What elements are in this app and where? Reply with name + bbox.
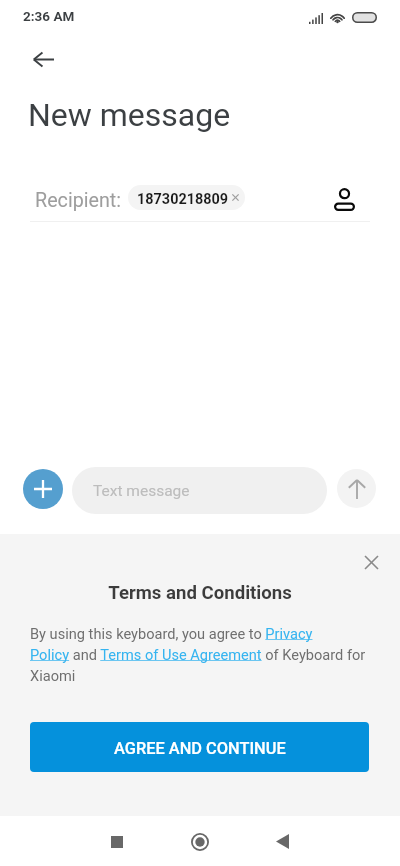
button[interactable]: Back: [258, 817, 307, 866]
button[interactable]: 18730218809: [128, 185, 245, 210]
staticText: Text message: [93, 482, 190, 500]
staticText: Terms and Conditions: [0, 582, 400, 604]
staticText: Xiaomi: [30, 667, 76, 684]
button[interactable]: Close: [357, 548, 386, 577]
staticText: Recipient:: [35, 189, 122, 212]
button[interactable]: Home: [175, 817, 224, 866]
button[interactable]: Back: [26, 42, 61, 77]
button[interactable]: Text message: [72, 467, 327, 514]
staticText: 18730218809: [137, 191, 229, 208]
button[interactable]: AGREE AND CONTINUE: [30, 722, 369, 772]
staticText: AGREE AND CONTINUE: [114, 739, 286, 758]
staticText: Policy and Terms of Use Agreement of Key…: [30, 646, 366, 663]
staticText: By using this keyboard, you agree to Pri…: [30, 625, 313, 642]
staticText: New message: [28, 96, 231, 134]
button[interactable]: Add attachment: [23, 469, 63, 509]
button[interactable]: Recents: [92, 817, 141, 866]
button[interactable]: Send: [337, 469, 376, 508]
button[interactable]: Choose contact: [328, 183, 361, 216]
staticText: 2:36 AM: [23, 8, 75, 24]
